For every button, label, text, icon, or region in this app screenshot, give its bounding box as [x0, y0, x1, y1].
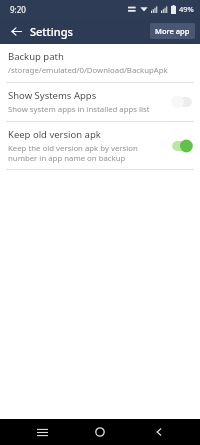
staticText: Keep old version apk [8, 128, 101, 141]
staticText: Show Systems Apps [8, 89, 97, 102]
staticText: More app [155, 26, 190, 36]
button[interactable]: Toggle off [170, 94, 194, 110]
button[interactable]: More app [150, 23, 195, 39]
staticText: /storage/emulated/0/Download/BackupApk [8, 65, 168, 76]
staticText: Keep the old version apk by version numb… [8, 143, 164, 163]
button[interactable]: Show Systems Apps [0, 83, 200, 121]
staticText: Settings [30, 24, 73, 39]
button[interactable]: Back [142, 419, 176, 445]
staticText: 49% [179, 4, 194, 14]
button[interactable]: Home [83, 419, 117, 445]
button[interactable]: Keep old version apk [0, 122, 200, 169]
staticText: Backup path [8, 50, 64, 63]
staticText: 9:20 [10, 4, 26, 15]
staticText: Show system apps in installed apps list [8, 104, 150, 115]
button[interactable]: Recent apps [25, 419, 59, 445]
button[interactable]: Toggle on [170, 138, 194, 154]
button[interactable]: Back [6, 21, 26, 41]
button[interactable]: Backup path [0, 44, 200, 82]
